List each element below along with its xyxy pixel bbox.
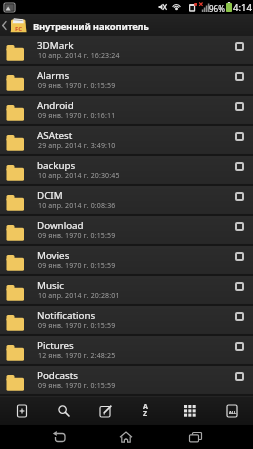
button[interactable]: backups [0, 156, 253, 186]
button[interactable] [169, 397, 211, 425]
staticText: Alarms [37, 69, 70, 82]
staticText: Pictures [37, 339, 74, 352]
staticText: 10 апр. 2014 г. 16:23:24 [38, 51, 120, 61]
button[interactable] [235, 222, 244, 231]
button[interactable]: Podcasts [0, 366, 253, 396]
button[interactable] [235, 252, 244, 261]
staticText: Внутренний накопитель [33, 20, 149, 33]
staticText: 10 апр. 2014 г. 0:08:36 [38, 201, 116, 211]
button[interactable]: ASAtest [0, 126, 253, 156]
button[interactable]: DCIM [0, 186, 253, 216]
staticText: FC [15, 25, 23, 33]
button[interactable] [0, 397, 43, 425]
staticText: 09 янв. 1970 г. 0:15:59 [38, 381, 116, 391]
button[interactable] [235, 372, 244, 381]
button[interactable] [235, 72, 244, 81]
staticText: Android [37, 99, 74, 112]
staticText: Download [37, 219, 84, 232]
staticText: Notifications [37, 309, 96, 322]
staticText: 4:14 [233, 1, 252, 14]
button[interactable]: Android [0, 96, 253, 126]
staticText: 10 апр. 2014 г. 20:30:45 [38, 171, 120, 181]
staticText: 09 янв. 1970 г. 0:15:59 [38, 81, 116, 91]
button[interactable]: Alarms [0, 66, 253, 96]
button[interactable]: Pictures [0, 336, 253, 366]
button[interactable]: Movies [0, 246, 253, 276]
button[interactable] [235, 102, 244, 111]
staticText: 10 апр. 2014 г. 20:28:01 [38, 291, 120, 301]
staticText: 12 янв. 1970 г. 2:48:25 [38, 351, 116, 361]
staticText: Z [143, 409, 148, 419]
button[interactable] [235, 132, 244, 141]
button[interactable] [85, 397, 127, 425]
staticText: 09 янв. 1970 г. 0:16:11 [38, 111, 116, 121]
button[interactable]: Notifications [0, 306, 253, 336]
staticText: DCIM [37, 189, 63, 202]
button[interactable] [174, 425, 216, 449]
staticText: 09 янв. 1970 г. 0:15:59 [38, 321, 116, 331]
button[interactable] [235, 342, 244, 351]
button[interactable]: A [127, 397, 169, 425]
staticText: 96% [209, 3, 225, 14]
button[interactable]: 3DMark [0, 36, 253, 66]
button[interactable] [235, 312, 244, 321]
button[interactable] [105, 425, 147, 449]
button[interactable] [235, 42, 244, 51]
staticText: Podcasts [37, 369, 78, 382]
staticText: 29 апр. 2014 г. 3:49:10 [38, 141, 116, 151]
staticText: backups [37, 159, 76, 172]
staticText: ALL [229, 410, 237, 415]
staticText: 3DMark [37, 39, 74, 52]
staticText: Music [37, 279, 64, 292]
button[interactable]: Download [0, 216, 253, 246]
button[interactable]: ALL [211, 397, 253, 425]
button[interactable]: FC [0, 14, 253, 36]
staticText: Movies [37, 249, 70, 262]
button[interactable] [235, 192, 244, 201]
staticText: A [143, 402, 148, 412]
staticText: 09 янв. 1970 г. 0:15:59 [38, 261, 116, 271]
button[interactable] [43, 397, 85, 425]
button[interactable]: Music [0, 276, 253, 306]
staticText: 09 янв. 1970 г. 0:15:59 [38, 231, 116, 241]
button[interactable] [235, 162, 244, 171]
staticText: ASAtest [37, 129, 73, 142]
button[interactable] [235, 282, 244, 291]
button[interactable] [38, 425, 80, 449]
